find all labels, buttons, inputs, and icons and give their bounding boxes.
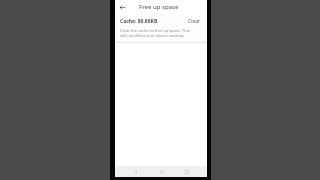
staticText: Free up space — [139, 3, 179, 11]
button[interactable]: Cache: 86.86KB — [115, 14, 207, 42]
button[interactable]: Back — [130, 166, 141, 177]
button[interactable]: Clear — [187, 17, 202, 26]
staticText: Clear the cache to free up space. This w… — [120, 28, 195, 38]
button[interactable]: Back — [115, 0, 129, 14]
staticText: Clear — [188, 18, 201, 25]
staticText: Cache: 86.86KB — [120, 18, 158, 25]
button[interactable]: Home — [156, 166, 167, 177]
button[interactable]: Recent apps — [181, 166, 192, 177]
